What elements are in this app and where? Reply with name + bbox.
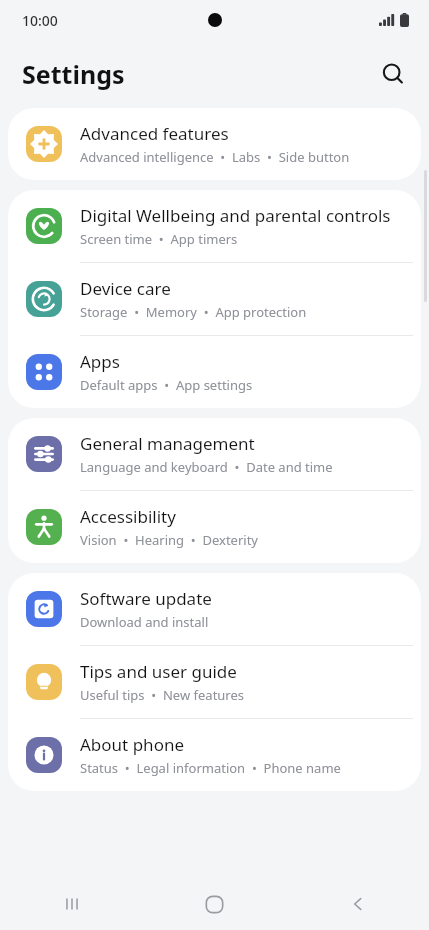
button[interactable]: Software update — [8, 573, 421, 645]
staticText: Device care — [80, 277, 171, 300]
staticText: Software update — [80, 587, 212, 610]
staticText: Accessibility — [80, 505, 176, 528]
button[interactable]: Accessibility — [8, 491, 421, 563]
button[interactable]: Tips and user guide — [8, 646, 421, 718]
button[interactable]: Search settings — [371, 52, 415, 96]
staticText: Download and install — [80, 613, 209, 631]
button[interactable]: Back — [286, 878, 429, 930]
button[interactable]: Recent apps — [0, 878, 143, 930]
button[interactable]: Device care — [8, 263, 421, 335]
staticText: Status • Legal information • Phone name — [80, 759, 341, 777]
button[interactable]: Advanced features — [8, 108, 421, 180]
staticText: 10:00 — [22, 11, 58, 30]
staticText: Language and keyboard • Date and time — [80, 458, 333, 476]
staticText: Settings — [22, 57, 125, 91]
staticText: Digital Wellbeing and parental controls — [80, 204, 391, 227]
button[interactable]: About phone — [8, 719, 421, 791]
button[interactable]: Apps — [8, 336, 421, 408]
button[interactable]: Digital Wellbeing and parental controls — [8, 190, 421, 262]
staticText: Apps — [80, 350, 120, 373]
staticText: Tips and user guide — [80, 660, 237, 683]
staticText: Advanced features — [80, 122, 229, 145]
staticText: Vision • Hearing • Dexterity — [80, 531, 258, 549]
staticText: Useful tips • New features — [80, 686, 245, 704]
staticText: Default apps • App settings — [80, 376, 253, 394]
staticText: Advanced intelligence • Labs • Side butt… — [80, 148, 350, 166]
button[interactable]: General management — [8, 418, 421, 490]
staticText: Storage • Memory • App protection — [80, 303, 307, 321]
button[interactable]: Home — [143, 878, 286, 930]
staticText: General management — [80, 432, 255, 455]
staticText: Screen time • App timers — [80, 230, 238, 248]
staticText: About phone — [80, 733, 185, 756]
